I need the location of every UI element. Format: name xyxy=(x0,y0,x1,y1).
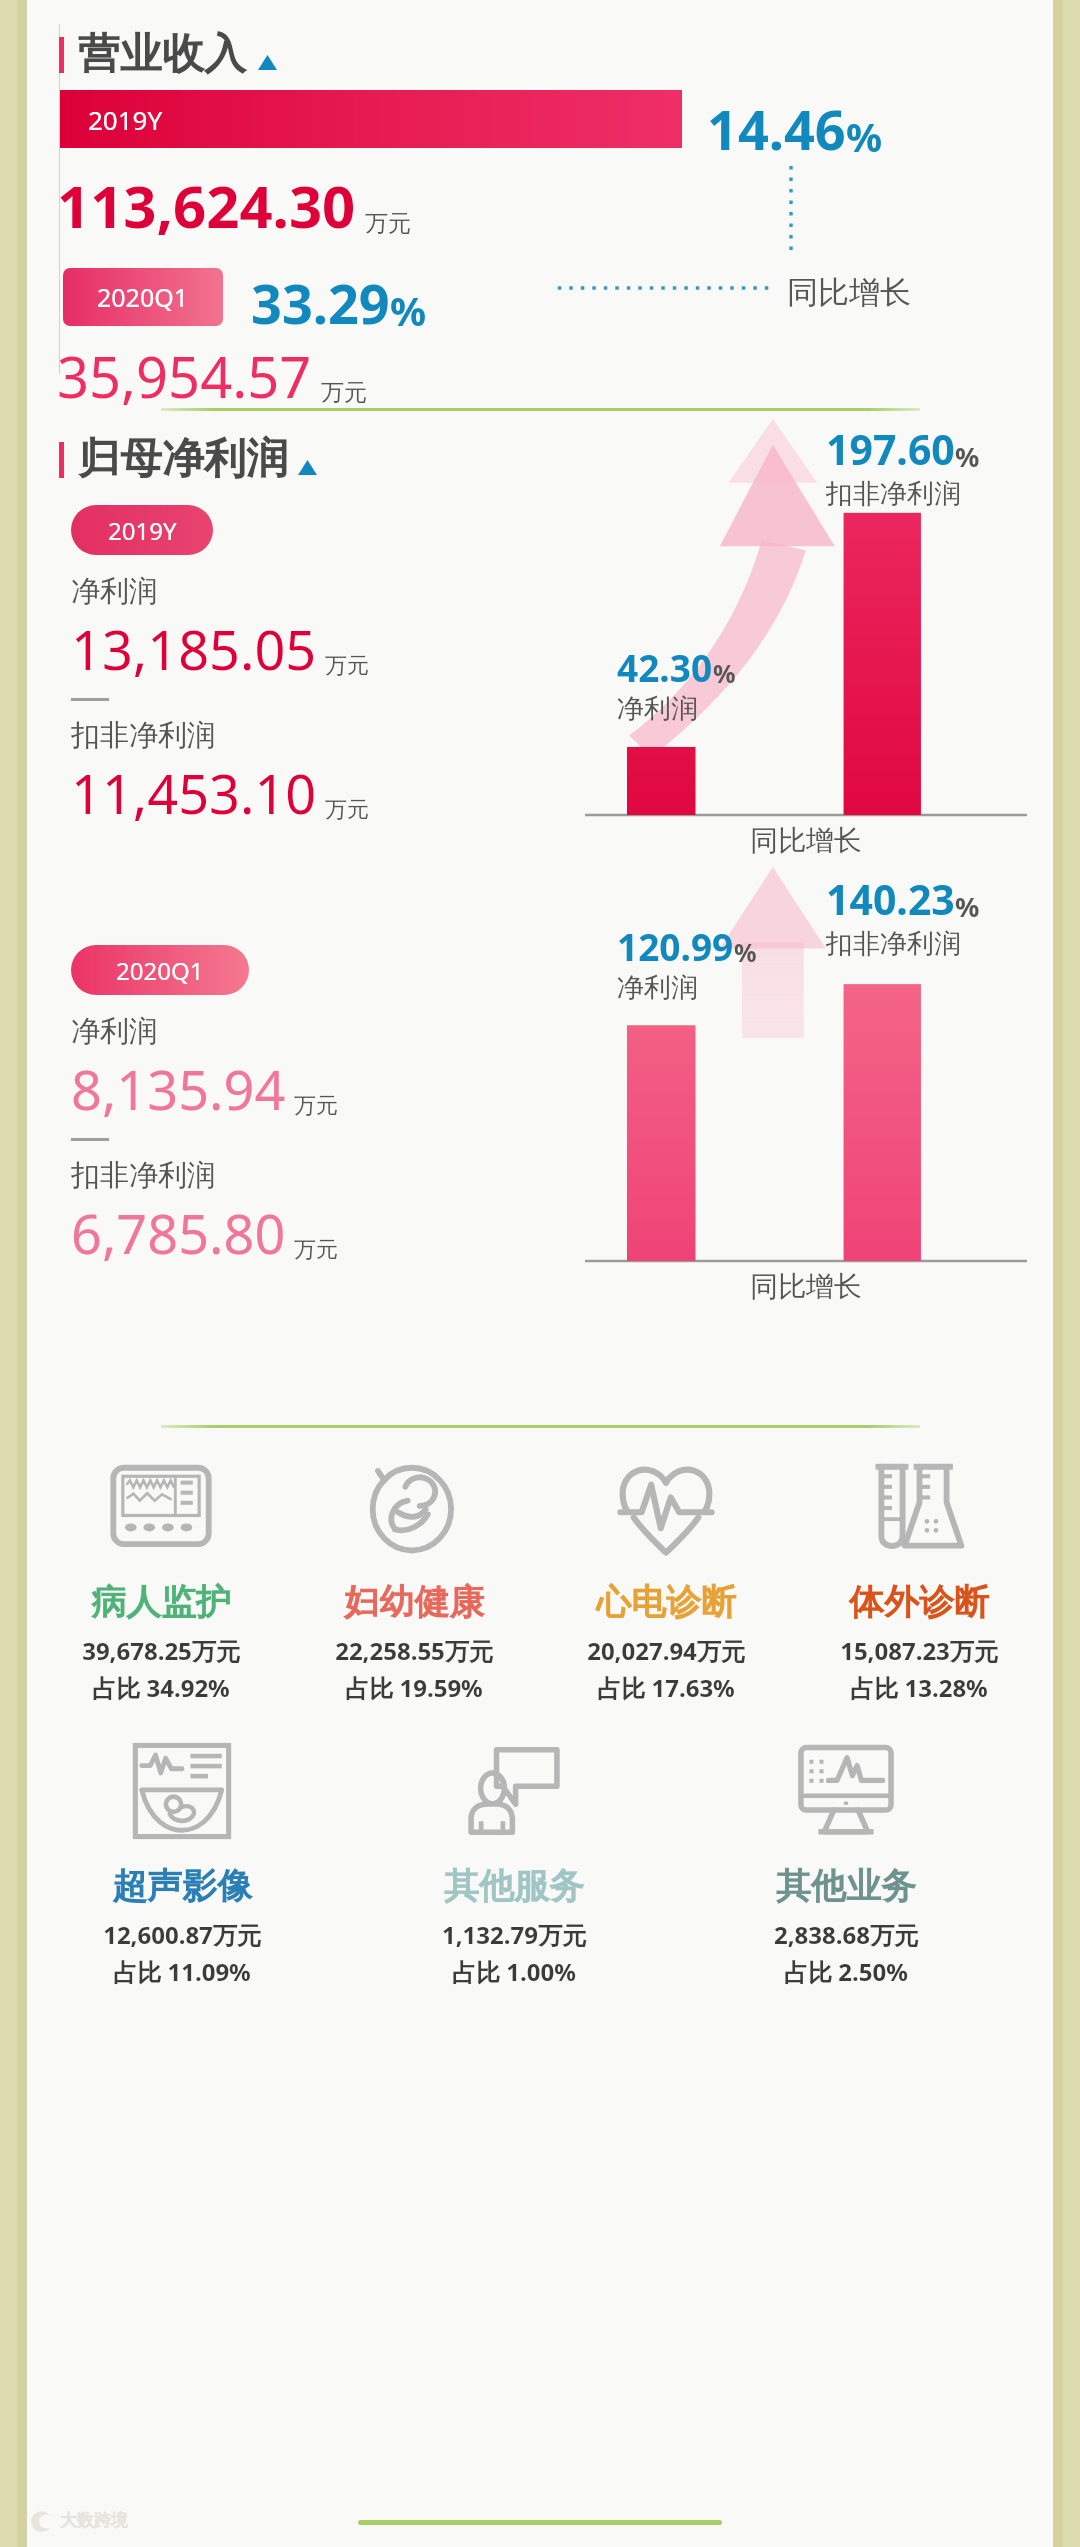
button[interactable]: 心电诊断 xyxy=(547,1454,785,1704)
staticText: 占比 11.09% xyxy=(113,1955,251,1988)
staticText: 营业收入 xyxy=(78,28,246,81)
staticText: 占比 13.28% xyxy=(850,1671,988,1704)
staticText: 39,678.25万元 xyxy=(82,1634,240,1667)
other: 其他业务 xyxy=(793,1738,899,1844)
staticText: 占比 1.00% xyxy=(452,1955,576,1988)
button[interactable]: 2019Y xyxy=(71,505,213,555)
staticText: 万元 xyxy=(294,1236,338,1264)
staticText: 万元 xyxy=(325,796,369,824)
staticText: 42.30 xyxy=(617,642,713,692)
button[interactable]: 2020Q1 xyxy=(71,945,249,995)
staticText: 其他业务 xyxy=(776,1864,916,1908)
staticText: 心电诊断 xyxy=(596,1580,736,1624)
staticText: 万元 xyxy=(365,209,411,238)
button[interactable]: 超声影像 xyxy=(63,1738,301,1988)
button[interactable]: 营业收入 xyxy=(59,28,277,81)
staticText: 15,087.23万元 xyxy=(840,1634,998,1667)
staticText: 扣非净利润 xyxy=(71,717,216,754)
staticText: 占比 17.63% xyxy=(597,1671,735,1704)
staticText: 同比增长 xyxy=(787,273,911,312)
other: 其他服务 xyxy=(461,1738,567,1844)
button[interactable]: 妇幼健康 xyxy=(295,1454,533,1704)
staticText: 其他服务 xyxy=(444,1864,584,1908)
staticText: 占比 2.50% xyxy=(784,1955,908,1988)
staticText: 140.23 xyxy=(826,871,955,927)
other: 妇幼健康 xyxy=(361,1454,467,1560)
staticText: 22,258.55万元 xyxy=(335,1634,493,1667)
staticText: % xyxy=(734,935,757,969)
staticText: 113,624.30 xyxy=(57,166,356,245)
button[interactable]: 归母净利润 xyxy=(59,433,317,486)
staticText: % xyxy=(955,888,980,925)
staticText: 13,185.05 xyxy=(71,612,317,686)
staticText: 净利润 xyxy=(71,573,158,610)
staticText: 扣非净利润 xyxy=(826,477,961,511)
staticText: 大数跨境 xyxy=(60,2510,128,2531)
staticText: 同比增长 xyxy=(750,823,862,858)
other: 体外诊断 xyxy=(866,1454,972,1560)
staticText: 120.99 xyxy=(617,921,734,971)
button[interactable]: 其他业务 xyxy=(727,1738,965,1988)
staticText: 11,453.10 xyxy=(71,756,317,830)
staticText: 万元 xyxy=(325,652,369,680)
staticText: 体外诊断 xyxy=(849,1580,989,1624)
button[interactable]: 2020Q1 xyxy=(63,268,223,326)
staticText: 2,838.68万元 xyxy=(774,1918,918,1951)
staticText: 占比 19.59% xyxy=(345,1671,483,1704)
other: 心电诊断 xyxy=(613,1454,719,1560)
staticText: 病人监护 xyxy=(91,1580,231,1624)
staticText: 2019Y xyxy=(108,514,177,547)
staticText: 净利润 xyxy=(617,971,698,1005)
staticText: 6,785.80 xyxy=(71,1196,286,1270)
staticText: 妇幼健康 xyxy=(344,1580,484,1624)
staticText: 14.46 xyxy=(707,92,846,166)
staticText: 万元 xyxy=(321,378,367,407)
staticText: 2020Q1 xyxy=(97,280,189,314)
button[interactable]: 其他服务 xyxy=(395,1738,633,1988)
staticText: 扣非净利润 xyxy=(71,1157,216,1194)
staticText: 2019Y xyxy=(88,102,163,137)
staticText: 197.60 xyxy=(826,421,955,477)
staticText: 万元 xyxy=(294,1092,338,1120)
staticText: 归母净利润 xyxy=(78,433,288,486)
staticText: % xyxy=(846,109,883,163)
button[interactable]: 体外诊断 xyxy=(800,1454,1038,1704)
staticText: 35,954.57 xyxy=(57,338,312,414)
staticText: 同比增长 xyxy=(750,1269,862,1304)
staticText: 净利润 xyxy=(71,1013,158,1050)
staticText: 超声影像 xyxy=(112,1864,252,1908)
staticText: 扣非净利润 xyxy=(826,927,961,961)
other: 病人监护 xyxy=(108,1454,214,1560)
staticText: 净利润 xyxy=(617,692,698,726)
other: 超声影像 xyxy=(129,1738,235,1844)
staticText: 8,135.94 xyxy=(71,1052,286,1126)
staticText: % xyxy=(713,656,736,690)
staticText: % xyxy=(390,283,427,337)
button[interactable]: 病人监护 xyxy=(42,1454,280,1704)
staticText: 2020Q1 xyxy=(116,954,204,987)
staticText: 20,027.94万元 xyxy=(587,1634,745,1667)
staticText: % xyxy=(955,438,980,475)
staticText: 12,600.87万元 xyxy=(103,1918,261,1951)
staticText: 1,132.79万元 xyxy=(442,1918,586,1951)
staticText: 占比 34.92% xyxy=(92,1671,230,1704)
staticText: 33.29 xyxy=(251,266,390,340)
